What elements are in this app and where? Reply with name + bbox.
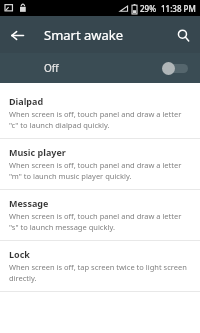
button[interactable]: Music player [0,139,200,190]
staticText: When screen is off, touch panel and draw… [9,109,182,130]
button[interactable]: Back [0,18,34,52]
button[interactable]: Lock [0,241,200,292]
staticText: Message [9,197,49,209]
button[interactable]: Off [0,53,200,83]
staticText: Lock [9,248,30,260]
staticText: Off [44,61,59,75]
staticText: Smart awake [44,26,124,44]
staticText: When screen is off, tap screen twice to … [9,262,187,283]
button[interactable]: Dialpad [0,88,200,139]
staticText: Dialpad [9,95,44,107]
staticText: 11:38 PM [161,3,196,14]
staticText: Music player [9,146,66,158]
button[interactable]: Search [166,18,200,52]
button[interactable]: Message [0,190,200,241]
staticText: 29% [140,3,156,14]
staticText: When screen is off, touch panel and draw… [9,160,182,181]
staticText: When screen is off, touch panel and draw… [9,211,182,232]
